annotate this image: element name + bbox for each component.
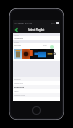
button[interactable]: Album cover: [14, 49, 22, 59]
staticText: ••••• carrier 9:41 AM: [14, 22, 33, 25]
staticText: 50 songs: [14, 44, 22, 46]
button[interactable]: Add playlist: [50, 45, 54, 49]
staticText: Settings more: [14, 94, 26, 96]
staticText: Tracks: [14, 41, 19, 43]
staticText: 57%: [51, 22, 55, 25]
staticText: Name: [14, 34, 19, 36]
staticText: Select Playlist: [28, 28, 45, 31]
button[interactable]: Album cover: [46, 49, 54, 59]
button[interactable]: Album cover: [22, 49, 30, 59]
button[interactable]: Search: [52, 51, 56, 55]
staticText: Recently: [14, 78, 21, 80]
staticText: 3:20: [43, 44, 47, 46]
staticText: Weekly mix: [14, 82, 23, 84]
staticText: Uptempo: [14, 37, 23, 40]
button[interactable]: Back: [14, 26, 19, 33]
button[interactable]: Album cover: [30, 49, 38, 59]
staticText: Liked: [14, 90, 19, 92]
button[interactable]: Album cover: [38, 49, 46, 59]
staticText: Download: [14, 86, 24, 89]
